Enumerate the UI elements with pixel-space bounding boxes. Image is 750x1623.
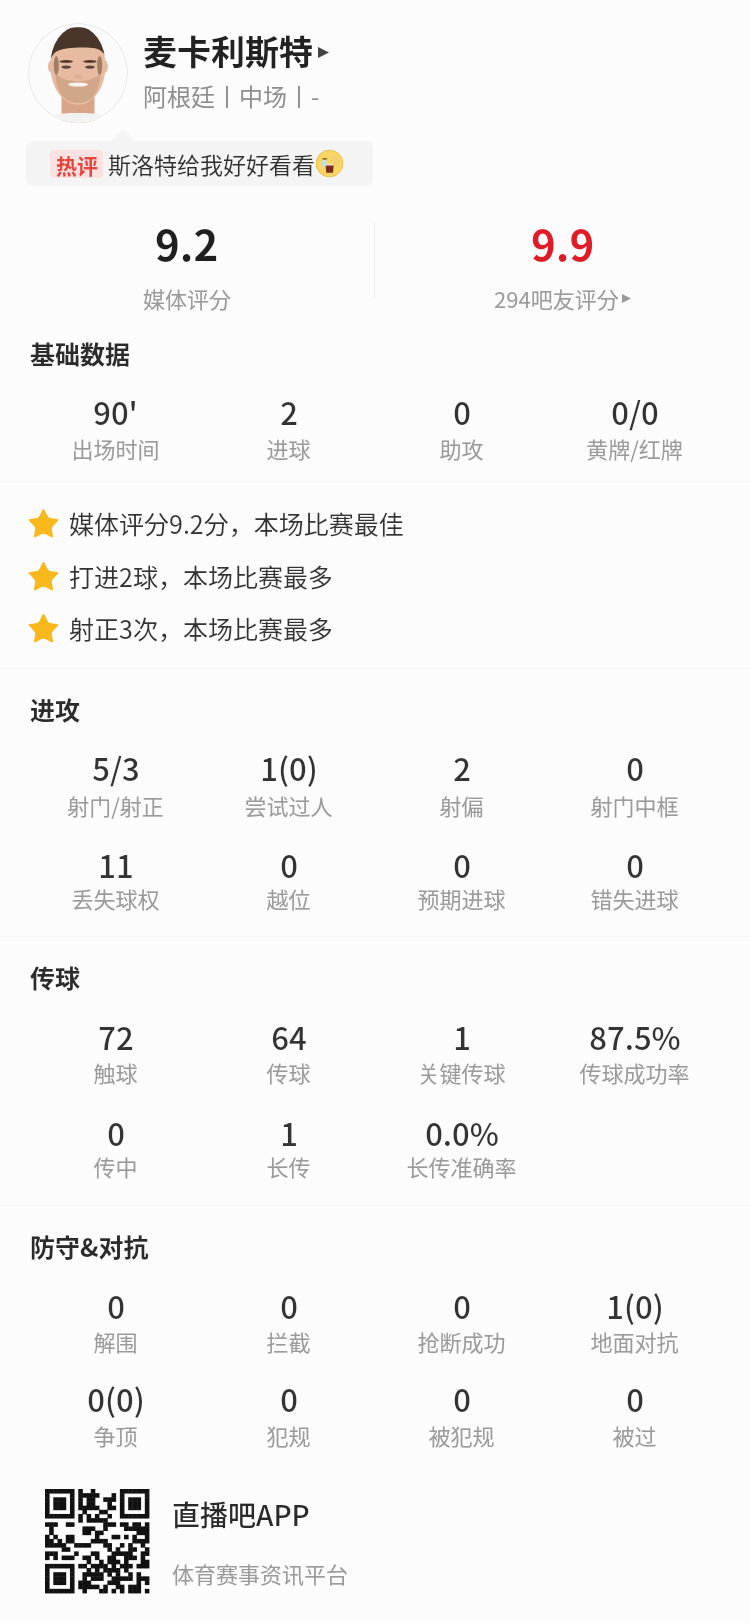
- staticText: 直播吧APP: [172, 1494, 310, 1535]
- staticText: 72: [98, 1014, 134, 1059]
- button[interactable]: 9.9: [375, 202, 750, 312]
- staticText: 11: [98, 842, 134, 887]
- staticText: 黄牌/红牌: [586, 432, 683, 464]
- staticText: 出场时间: [71, 432, 160, 464]
- button[interactable]: Player avatar: [28, 23, 128, 123]
- staticText: 进攻: [30, 691, 81, 727]
- button[interactable]: 麦卡利斯特 player profile: [143, 26, 329, 75]
- button[interactable]: 打进2球，本场比赛最多: [27, 554, 333, 598]
- staticText: 0: [453, 1376, 471, 1421]
- staticText: 2: [453, 745, 471, 790]
- staticText: 9.9: [531, 212, 595, 273]
- staticText: 传球成功率: [579, 1056, 690, 1088]
- staticText: 传球: [30, 959, 81, 995]
- staticText: 0: [453, 1283, 471, 1328]
- staticText: 争顶: [93, 1419, 138, 1451]
- button[interactable]: 9.2: [0, 202, 374, 312]
- staticText: 关键传球: [417, 1056, 506, 1088]
- staticText: 87.5%: [589, 1014, 681, 1059]
- staticText: 64: [271, 1014, 307, 1059]
- staticText: 体育赛事资讯平台: [172, 1557, 349, 1589]
- staticText: 传球: [266, 1056, 311, 1088]
- staticText: 0: [107, 1110, 125, 1155]
- staticText: 90': [93, 389, 138, 434]
- staticText: 打进2球，本场比赛最多: [69, 558, 333, 594]
- staticText: 射门中框: [590, 789, 679, 821]
- staticText: 0: [280, 842, 298, 887]
- staticText: 5/3: [92, 745, 140, 790]
- staticText: 基础数据: [30, 335, 131, 371]
- staticText: 拦截: [266, 1325, 311, 1357]
- staticText: 抢断成功: [417, 1325, 506, 1357]
- staticText: 射门/射正: [67, 789, 164, 821]
- staticText: 1(0): [606, 1283, 664, 1328]
- staticText: 1: [453, 1014, 471, 1059]
- staticText: 0: [280, 1283, 298, 1328]
- staticText: 媒体评分: [143, 282, 232, 314]
- staticText: 犯规: [266, 1419, 311, 1451]
- staticText: 麦卡利斯特: [143, 26, 313, 75]
- staticText: 长传准确率: [406, 1150, 517, 1182]
- staticText: 助攻: [439, 432, 484, 464]
- staticText: 2: [280, 389, 298, 434]
- staticText: 0.0%: [425, 1110, 499, 1155]
- staticText: 0: [626, 1376, 644, 1421]
- staticText: 解围: [93, 1325, 138, 1357]
- staticText: 0(0): [87, 1376, 145, 1421]
- staticText: 1(0): [260, 745, 318, 790]
- staticText: 9.2: [155, 212, 219, 273]
- staticText: 长传: [266, 1150, 311, 1182]
- staticText: 媒体评分9.2分，本场比赛最佳: [69, 505, 404, 541]
- staticText: 0: [107, 1283, 125, 1328]
- staticText: 防守&对抗: [30, 1228, 149, 1264]
- staticText: 被过: [612, 1419, 657, 1451]
- button[interactable]: 热评: [26, 141, 373, 186]
- staticText: 丢失球权: [71, 882, 160, 914]
- staticText: 被犯规: [428, 1419, 495, 1451]
- staticText: 1: [280, 1110, 298, 1155]
- button[interactable]: 媒体评分9.2分，本场比赛最佳: [27, 501, 404, 545]
- staticText: 地面对抗: [590, 1325, 679, 1357]
- staticText: 0/0: [611, 389, 659, 434]
- staticText: 射偏: [439, 789, 484, 821]
- staticText: 斯洛特给我好好看看: [108, 147, 315, 180]
- staticText: 热评: [56, 150, 98, 178]
- staticText: 0: [453, 389, 471, 434]
- staticText: 0: [626, 745, 644, 790]
- staticText: 0: [453, 842, 471, 887]
- other: sobbing emoji: [315, 149, 344, 178]
- button[interactable]: 直播吧APP QR code download: [45, 1489, 349, 1593]
- staticText: 触球: [93, 1056, 138, 1088]
- staticText: 进球: [266, 432, 311, 464]
- staticText: 错失进球: [590, 882, 679, 914]
- staticText: 0: [280, 1376, 298, 1421]
- button[interactable]: 射正3次，本场比赛最多: [27, 606, 333, 650]
- staticText: 射正3次，本场比赛最多: [69, 610, 333, 646]
- staticText: 0: [626, 842, 644, 887]
- staticText: 预期进球: [417, 882, 506, 914]
- staticText: 越位: [266, 882, 311, 914]
- staticText: 传中: [93, 1150, 138, 1182]
- staticText: 尝试过人: [244, 789, 333, 821]
- staticText: 阿根廷丨中场丨-: [143, 78, 320, 113]
- staticText: 294吧友评分: [494, 282, 619, 314]
